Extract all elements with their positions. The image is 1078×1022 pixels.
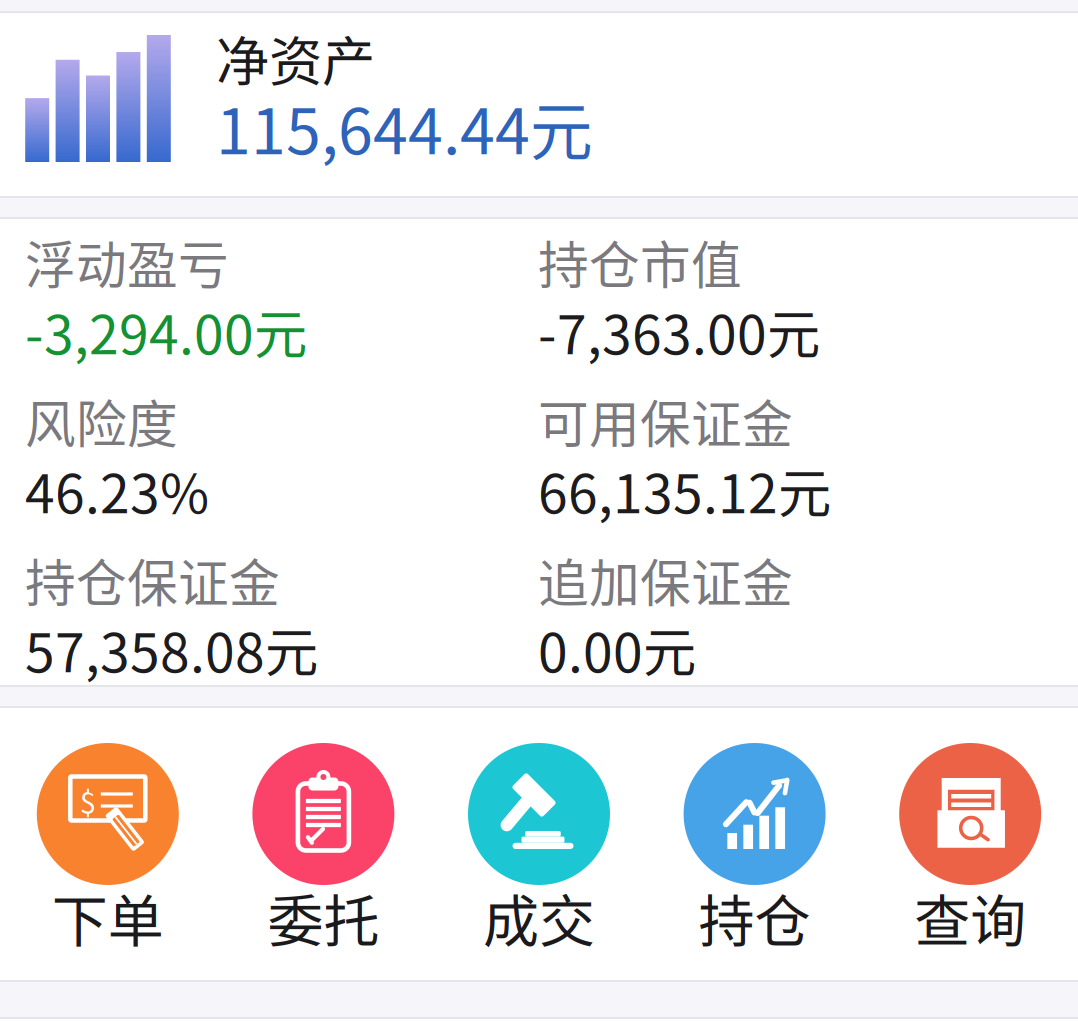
staticText: 净资产 [216, 19, 375, 97]
staticText: 查询 [914, 876, 1026, 958]
button[interactable]: 查询 [862, 743, 1078, 943]
staticText: 风险度 [25, 384, 178, 458]
staticText: 115,644.44元 [216, 82, 593, 172]
staticText: 0.00元 [538, 610, 696, 688]
staticText: 57,358.08元 [25, 610, 318, 688]
staticText: 持仓市值 [538, 225, 742, 299]
staticText: 浮动盈亏 [25, 225, 229, 299]
staticText: -3,294.00元 [25, 292, 307, 370]
staticText: 持仓保证金 [25, 543, 280, 617]
staticText: 46.23% [25, 451, 209, 529]
button[interactable]: 持仓 [647, 743, 862, 943]
staticText: $ [80, 780, 96, 822]
button[interactable]: $ [0, 743, 216, 943]
staticText: 下单 [52, 876, 164, 958]
staticText: 持仓 [699, 876, 811, 958]
button[interactable]: 成交 [431, 743, 647, 943]
staticText: 委托 [267, 876, 379, 958]
button[interactable]: 委托 [216, 743, 431, 943]
staticText: 可用保证金 [538, 384, 793, 458]
staticText: 追加保证金 [538, 543, 793, 617]
staticText: 成交 [483, 876, 595, 958]
staticText: -7,363.00元 [538, 292, 820, 370]
staticText: 66,135.12元 [538, 451, 831, 529]
